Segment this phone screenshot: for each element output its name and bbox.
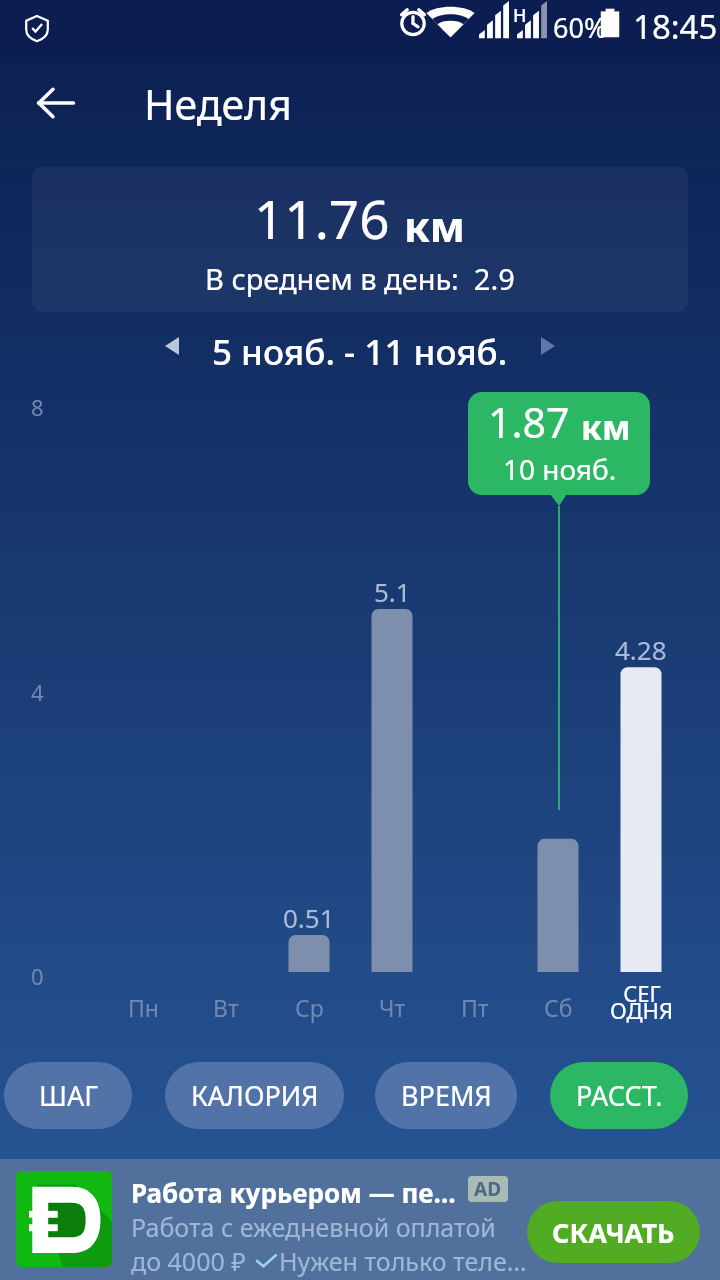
staticText: ОДНЯ <box>610 995 673 1025</box>
staticText: Работа с ежедневной оплатой <box>131 1210 496 1244</box>
staticText: 5 нояб. - 11 нояб. <box>212 328 508 376</box>
staticText: В среднем в день: 2.9 <box>205 259 515 298</box>
staticText: РАССТ. <box>576 1077 663 1114</box>
button[interactable]: Работа курьером — пе… <box>0 1159 720 1280</box>
staticText: 0 <box>31 961 44 991</box>
staticText: км <box>404 197 466 254</box>
staticText: 4.28 <box>615 632 667 667</box>
staticText: Нужен только теле… <box>279 1244 527 1278</box>
button[interactable]: ВРЕМЯ <box>375 1062 517 1129</box>
button[interactable]: 1.87 <box>468 392 650 495</box>
staticText: 4 <box>31 677 44 707</box>
button[interactable]: КАЛОРИЯ <box>165 1062 344 1129</box>
staticText: Чт <box>379 992 406 1023</box>
staticText: СЕГ <box>623 978 661 1008</box>
staticText: 10 нояб. <box>503 450 617 488</box>
staticText: Пн <box>128 992 159 1023</box>
staticText: 11.76 <box>254 182 404 254</box>
button[interactable]: ШАГ <box>4 1062 132 1129</box>
staticText: 60% <box>553 9 607 46</box>
staticText: СКАЧАТЬ <box>552 1214 675 1251</box>
staticText: до 4000 ₽ <box>131 1244 253 1278</box>
staticText: км <box>581 404 631 450</box>
staticText: 5.1 <box>374 574 411 609</box>
staticText: AD <box>474 1176 502 1202</box>
staticText: 18:45 <box>633 4 718 49</box>
staticText: Пт <box>461 992 489 1023</box>
staticText: 8 <box>31 392 44 422</box>
staticText: H <box>513 3 527 28</box>
staticText: Неделя <box>144 76 292 132</box>
button[interactable]: Previous week <box>148 322 196 370</box>
button[interactable]: РАССТ. <box>550 1062 688 1129</box>
button[interactable]: Back <box>28 75 84 131</box>
staticText: ШАГ <box>39 1077 98 1114</box>
button[interactable]: Next week <box>524 322 572 370</box>
staticText: 0.51 <box>283 900 335 935</box>
staticText: Ср <box>295 992 324 1023</box>
button[interactable]: 11.76 <box>32 167 688 312</box>
staticText: 1.87 <box>488 394 581 450</box>
staticText: Вт <box>213 992 239 1023</box>
staticText: ВРЕМЯ <box>401 1077 492 1114</box>
button[interactable]: СКАЧАТЬ <box>527 1201 700 1263</box>
staticText: Сб <box>544 992 573 1023</box>
staticText: КАЛОРИЯ <box>191 1077 319 1114</box>
staticText: Работа курьером — пе… <box>131 1175 456 1210</box>
